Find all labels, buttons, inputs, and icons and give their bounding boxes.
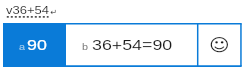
staticText: ↵ (50, 7, 57, 17)
staticText: 36+54=90 (92, 36, 173, 53)
staticText: b (82, 41, 89, 51)
staticText: a (19, 41, 26, 51)
staticText: ☺ (209, 35, 230, 55)
button[interactable]: a (3, 23, 66, 67)
staticText: 90 (27, 36, 47, 53)
button[interactable]: Emoji (198, 23, 242, 67)
staticText: v36+54 (6, 4, 50, 17)
button[interactable]: b (66, 23, 198, 67)
